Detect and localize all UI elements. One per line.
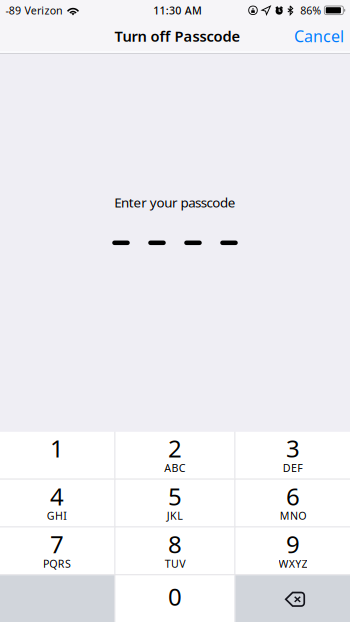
staticText: 9 — [286, 528, 300, 560]
button[interactable]: 4 — [0, 480, 114, 527]
button[interactable]: 5 — [115, 480, 234, 527]
staticText: WXYZ — [279, 556, 307, 571]
staticText: 5 — [168, 480, 182, 512]
staticText: Cancel — [294, 25, 344, 47]
button[interactable]: 7 — [0, 527, 114, 574]
staticText: -89 Verizon — [5, 3, 63, 17]
staticText: 3 — [286, 432, 300, 464]
staticText: 7 — [50, 528, 64, 560]
staticText: 1 — [50, 432, 64, 464]
staticText: 0 — [168, 580, 182, 612]
staticText: Turn off Passcode — [114, 26, 240, 46]
staticText: PQRS — [43, 556, 71, 571]
staticText: 86% — [300, 3, 321, 17]
button[interactable]: 1 — [0, 432, 114, 479]
button[interactable]: 2 — [115, 432, 234, 479]
staticText: 4 — [50, 480, 64, 512]
button[interactable]: 8 — [115, 527, 234, 574]
button[interactable]: Cancel — [282, 21, 350, 52]
staticText: GHI — [47, 509, 67, 523]
button[interactable]: 6 — [235, 480, 350, 527]
staticText: 11:30 AM — [153, 3, 202, 17]
staticText: ABC — [164, 461, 186, 475]
staticText: Enter your passcode — [114, 193, 236, 211]
staticText: JKL — [167, 509, 183, 523]
button[interactable]: 3 — [235, 432, 350, 479]
staticText: DEF — [283, 461, 303, 475]
staticText: TUV — [165, 556, 185, 571]
staticText: 8 — [168, 528, 182, 560]
button[interactable]: 9 — [235, 527, 350, 574]
button[interactable]: Delete — [235, 575, 350, 622]
staticText: 6 — [286, 480, 300, 512]
button[interactable]: 0 — [115, 575, 234, 622]
staticText: 2 — [168, 432, 182, 464]
staticText: MNO — [280, 509, 306, 523]
